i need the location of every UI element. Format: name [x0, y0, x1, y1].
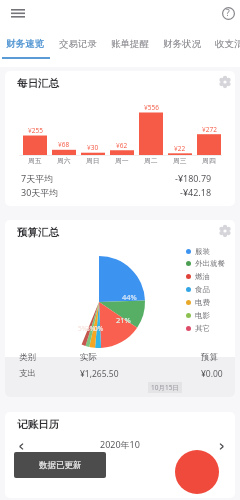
staticText: 服装 — [195, 247, 210, 256]
staticText: 周二 — [144, 156, 158, 165]
button[interactable]: 收支清 — [211, 31, 240, 57]
staticText: ¥68 — [58, 140, 70, 149]
staticText: 7天平均 — [21, 172, 54, 184]
staticText: 记账日历 — [17, 418, 59, 431]
staticText: 交易记录 — [59, 38, 97, 50]
staticText: 电费 — [195, 298, 210, 307]
staticText: 周日 — [86, 156, 100, 165]
staticText: 30天平均 — [21, 186, 59, 198]
staticText: 周六 — [57, 156, 71, 165]
staticText: 财务速览 — [6, 38, 44, 50]
staticText: 外出就餐 — [195, 259, 225, 268]
staticText: 电影 — [195, 311, 210, 320]
staticText: 燃油 — [195, 272, 210, 281]
staticText: ¥22 — [174, 144, 186, 153]
staticText: 财务状况 — [163, 38, 201, 50]
staticText: 周五 — [28, 156, 42, 165]
button[interactable]: Next month — [211, 436, 231, 456]
staticText: 账单提醒 — [111, 38, 149, 50]
staticText: 3% — [86, 324, 96, 333]
staticText: 类别 — [19, 352, 36, 363]
staticText: 每日汇总 — [17, 77, 59, 90]
button[interactable]: 账单提醒 — [107, 31, 159, 57]
staticText: 其它 — [195, 324, 210, 333]
staticText: 收支清 — [215, 38, 240, 50]
staticText: ¥255 — [28, 126, 43, 135]
staticText: 44% — [122, 292, 137, 302]
staticText: 实际 — [80, 352, 97, 363]
staticText: 支出 — [19, 368, 36, 379]
staticText: 周三 — [173, 156, 187, 165]
button[interactable]: Add record — [175, 450, 219, 494]
button[interactable]: 财务状况 — [159, 31, 211, 57]
staticText: 5% — [78, 324, 88, 333]
button[interactable]: Previous month — [11, 436, 31, 456]
staticText: 10月15日 — [151, 383, 179, 392]
staticText: 2020年10 — [100, 438, 140, 450]
staticText: -¥180.79 — [175, 172, 212, 184]
staticText: 周一 — [115, 156, 129, 165]
button[interactable]: Menu — [3, 0, 33, 28]
staticText: 21% — [116, 315, 131, 325]
button[interactable]: Daily summary settings — [214, 71, 235, 93]
staticText: 预算 — [201, 352, 218, 363]
button[interactable]: Budget settings — [214, 220, 235, 242]
staticText: 0% — [94, 324, 104, 333]
staticText: ¥556 — [144, 103, 159, 112]
button[interactable]: 财务速览 — [2, 31, 54, 57]
staticText: ¥1,265.50 — [80, 368, 119, 380]
staticText: 周四 — [202, 156, 216, 165]
staticText: -¥42.18 — [180, 186, 212, 198]
staticText: 预算汇总 — [17, 226, 59, 239]
staticText: ¥272 — [202, 125, 217, 134]
staticText: ¥0.00 — [201, 368, 223, 380]
button[interactable]: Help — [216, 1, 240, 25]
button[interactable]: 交易记录 — [55, 31, 107, 57]
staticText: ¥30 — [87, 143, 99, 152]
staticText: 食品 — [195, 285, 210, 294]
staticText: ¥62 — [116, 141, 128, 150]
staticText: 数据已更新 — [39, 460, 82, 471]
staticText: ? — [226, 7, 230, 19]
